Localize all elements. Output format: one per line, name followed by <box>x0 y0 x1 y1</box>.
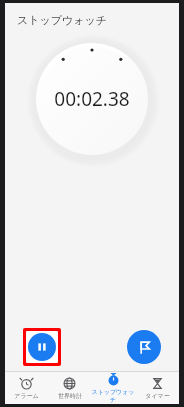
button[interactable]: ストップウォッチ <box>91 372 135 404</box>
button[interactable]: アラーム <box>5 372 48 404</box>
staticText: 世界時計 <box>58 392 82 400</box>
button[interactable]: タイマー <box>135 372 179 404</box>
button[interactable]: Lap <box>127 330 161 364</box>
staticText: アラーム <box>14 392 39 400</box>
staticText: タイマー <box>145 392 170 400</box>
button[interactable]: Pause <box>28 333 56 361</box>
staticText: ストップウォッチ <box>17 13 108 27</box>
button[interactable]: 世界時計 <box>48 372 91 404</box>
staticText: 00:02.38 <box>54 86 130 112</box>
staticText: ストップウォッチ <box>91 388 135 404</box>
